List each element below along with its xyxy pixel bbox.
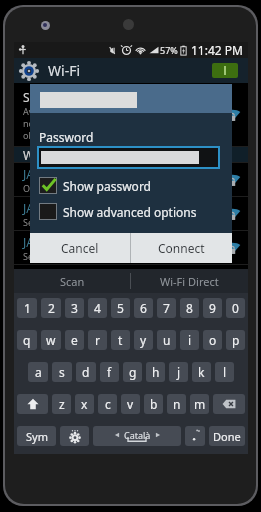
- button[interactable]: e: [65, 330, 84, 350]
- button[interactable]: w: [41, 330, 61, 350]
- button[interactable]: 2: [41, 298, 61, 318]
- staticText: w: [46, 332, 56, 348]
- button[interactable]: 3: [65, 298, 84, 318]
- staticText: 2: [48, 300, 55, 316]
- button[interactable]: Shift: [17, 394, 48, 414]
- button[interactable]: z: [52, 394, 71, 414]
- staticText: 7: [163, 300, 170, 316]
- button[interactable]: Show password: [39, 177, 232, 194]
- staticText: ONO2344: [23, 302, 79, 318]
- staticText: Scan: [60, 274, 85, 289]
- staticText: f: [107, 364, 112, 380]
- staticText: 11:42 PM: [191, 42, 243, 58]
- button[interactable]: d: [76, 362, 96, 382]
- button[interactable]: y: [134, 330, 153, 350]
- button[interactable]: Space: [93, 426, 181, 446]
- staticText: 1: [24, 300, 31, 316]
- staticText: y: [140, 332, 147, 348]
- button[interactable]: p: [226, 330, 245, 350]
- staticText: n: [173, 396, 181, 412]
- staticText: h: [152, 364, 160, 380]
- button[interactable]: 0: [226, 298, 245, 318]
- staticText: s: [59, 364, 65, 380]
- staticText: l: [223, 364, 227, 380]
- staticText: k: [198, 364, 205, 380]
- staticText: Done: [213, 429, 241, 444]
- button[interactable]: 6: [134, 298, 153, 318]
- button[interactable]: JAZZTEL_x9: [14, 231, 248, 264]
- button[interactable]: b: [144, 394, 163, 414]
- staticText: o: [209, 332, 217, 348]
- button[interactable]: 1: [17, 298, 37, 318]
- button[interactable]: m: [190, 394, 209, 414]
- staticText: 9: [209, 300, 216, 316]
- button[interactable]: 9: [203, 298, 222, 318]
- staticText: m: [194, 396, 206, 412]
- button[interactable]: c: [98, 394, 117, 414]
- button[interactable]: movistar_3244: [14, 265, 248, 298]
- button[interactable]: f: [100, 362, 119, 382]
- button[interactable]: Period: [185, 426, 205, 446]
- button[interactable]: a: [28, 362, 48, 382]
- button[interactable]: ONO2344: [14, 299, 248, 332]
- button[interactable]: l: [215, 362, 234, 382]
- staticText: i: [188, 332, 192, 348]
- button[interactable]: Connect: [131, 233, 232, 263]
- button[interactable]: h: [146, 362, 165, 382]
- staticText: Wi-Fi Direct: [160, 274, 219, 289]
- button[interactable]: r: [88, 330, 107, 350]
- button[interactable]: Done: [209, 426, 245, 446]
- staticText: SSID-Name: [23, 89, 87, 105]
- staticText: Secured with WPA2: [23, 250, 105, 262]
- staticText: WLAN_long_name_g: [23, 147, 138, 162]
- staticText: u: [163, 332, 171, 348]
- staticText: v: [127, 396, 134, 412]
- button[interactable]: Settings: [60, 426, 89, 446]
- staticText: r: [95, 332, 100, 348]
- staticText: b: [150, 396, 158, 412]
- button[interactable]: WLAN_long_name_g: [14, 147, 248, 162]
- button[interactable]: JAZZTEL_ab1: [14, 197, 248, 230]
- button[interactable]: s: [52, 362, 72, 382]
- staticText: Show advanced options: [63, 204, 197, 220]
- button[interactable]: o: [203, 330, 222, 350]
- staticText: t: [118, 332, 123, 348]
- staticText: Connect: [158, 240, 205, 256]
- staticText: Secured with WPA2: [23, 216, 105, 228]
- button[interactable]: g: [123, 362, 142, 382]
- button[interactable]: x: [75, 394, 94, 414]
- button[interactable]: n: [167, 394, 186, 414]
- button[interactable]: Show advanced options: [39, 203, 232, 220]
- button[interactable]: 4: [88, 298, 107, 318]
- staticText: 5: [117, 300, 124, 316]
- button[interactable]: j: [169, 362, 188, 382]
- staticText: movistar_3244: [23, 268, 105, 284]
- button[interactable]: Scan: [14, 269, 130, 293]
- button[interactable]: SSID-Name: [14, 83, 248, 146]
- button[interactable]: Wi-Fi Direct: [131, 269, 248, 293]
- button[interactable]: Wi-Fi toggle: [212, 63, 238, 78]
- button[interactable]: u: [157, 330, 176, 350]
- button[interactable]: Cancel: [30, 233, 130, 263]
- button[interactable]: k: [192, 362, 211, 382]
- staticText: 4: [94, 300, 101, 316]
- button[interactable]: 8: [180, 298, 199, 318]
- staticText: a: [35, 364, 42, 380]
- button[interactable]: 5: [111, 298, 130, 318]
- button[interactable]: q: [17, 330, 37, 350]
- staticText: z: [59, 396, 65, 412]
- button[interactable]: t: [111, 330, 130, 350]
- staticText: JAZZTEL_gfsd: [23, 166, 98, 182]
- button[interactable]: v: [121, 394, 140, 414]
- staticText: Wi-Fi: [48, 61, 81, 80]
- button[interactable]: Sym: [17, 426, 56, 446]
- staticText: e: [71, 332, 78, 348]
- staticText: 57%: [160, 44, 178, 56]
- staticText: q: [23, 332, 31, 348]
- button[interactable]: Backspace: [213, 394, 245, 414]
- button[interactable]: JAZZTEL_gfsd: [14, 163, 248, 196]
- button[interactable]: i: [180, 330, 199, 350]
- staticText: Show password: [63, 178, 151, 194]
- button[interactable]: 7: [157, 298, 176, 318]
